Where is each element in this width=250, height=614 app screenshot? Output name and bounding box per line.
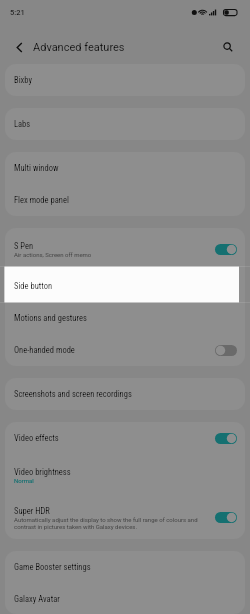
- button[interactable]: Multi window: [5, 152, 245, 184]
- button[interactable]: Toggle Super HDR: [215, 512, 237, 523]
- button[interactable]: Toggle One-handed mode: [215, 345, 237, 356]
- button[interactable]: Toggle S Pen: [215, 244, 237, 255]
- button[interactable]: Super HDR: [5, 496, 245, 539]
- staticText: Labs: [14, 119, 31, 129]
- staticText: Video brightness: [14, 467, 71, 477]
- button[interactable]: One-handed mode: [5, 334, 245, 366]
- button[interactable]: Motions and gestures: [5, 302, 245, 334]
- staticText: 5:21: [10, 8, 25, 17]
- staticText: Galaxy Avatar: [14, 594, 60, 604]
- staticText: Normal: [14, 477, 34, 484]
- button[interactable]: Labs: [5, 108, 245, 140]
- button[interactable]: Side button: [5, 270, 245, 302]
- button[interactable]: Bixby: [5, 64, 245, 96]
- button[interactable]: Galaxy Avatar: [5, 583, 245, 614]
- staticText: Video effects: [14, 433, 59, 443]
- staticText: Super HDR: [14, 506, 50, 516]
- button[interactable]: Flex mode panel: [5, 184, 245, 216]
- button[interactable]: S Pen: [5, 228, 245, 270]
- staticText: Automatically adjust the display to show…: [14, 516, 200, 530]
- staticText: Screenshots and screen recordings: [14, 389, 132, 399]
- button[interactable]: Video effects: [5, 422, 245, 454]
- button[interactable]: Search: [217, 36, 239, 58]
- staticText: S Pen: [14, 241, 34, 251]
- staticText: Side button: [14, 281, 53, 291]
- button[interactable]: Navigate up: [8, 36, 31, 59]
- button[interactable]: Video brightness: [5, 454, 245, 496]
- button[interactable]: Game Booster settings: [5, 551, 245, 583]
- staticText: Flex mode panel: [14, 195, 69, 205]
- staticText: Game Booster settings: [14, 562, 91, 572]
- button[interactable]: Screenshots and screen recordings: [5, 378, 245, 410]
- button[interactable]: Toggle Video effects: [215, 433, 237, 444]
- staticText: Advanced features: [33, 41, 125, 54]
- staticText: Bixby: [14, 75, 33, 85]
- staticText: Motions and gestures: [14, 313, 87, 323]
- staticText: One-handed mode: [14, 345, 75, 355]
- staticText: Air actions, Screen off memo: [14, 251, 92, 258]
- staticText: Multi window: [14, 163, 59, 173]
